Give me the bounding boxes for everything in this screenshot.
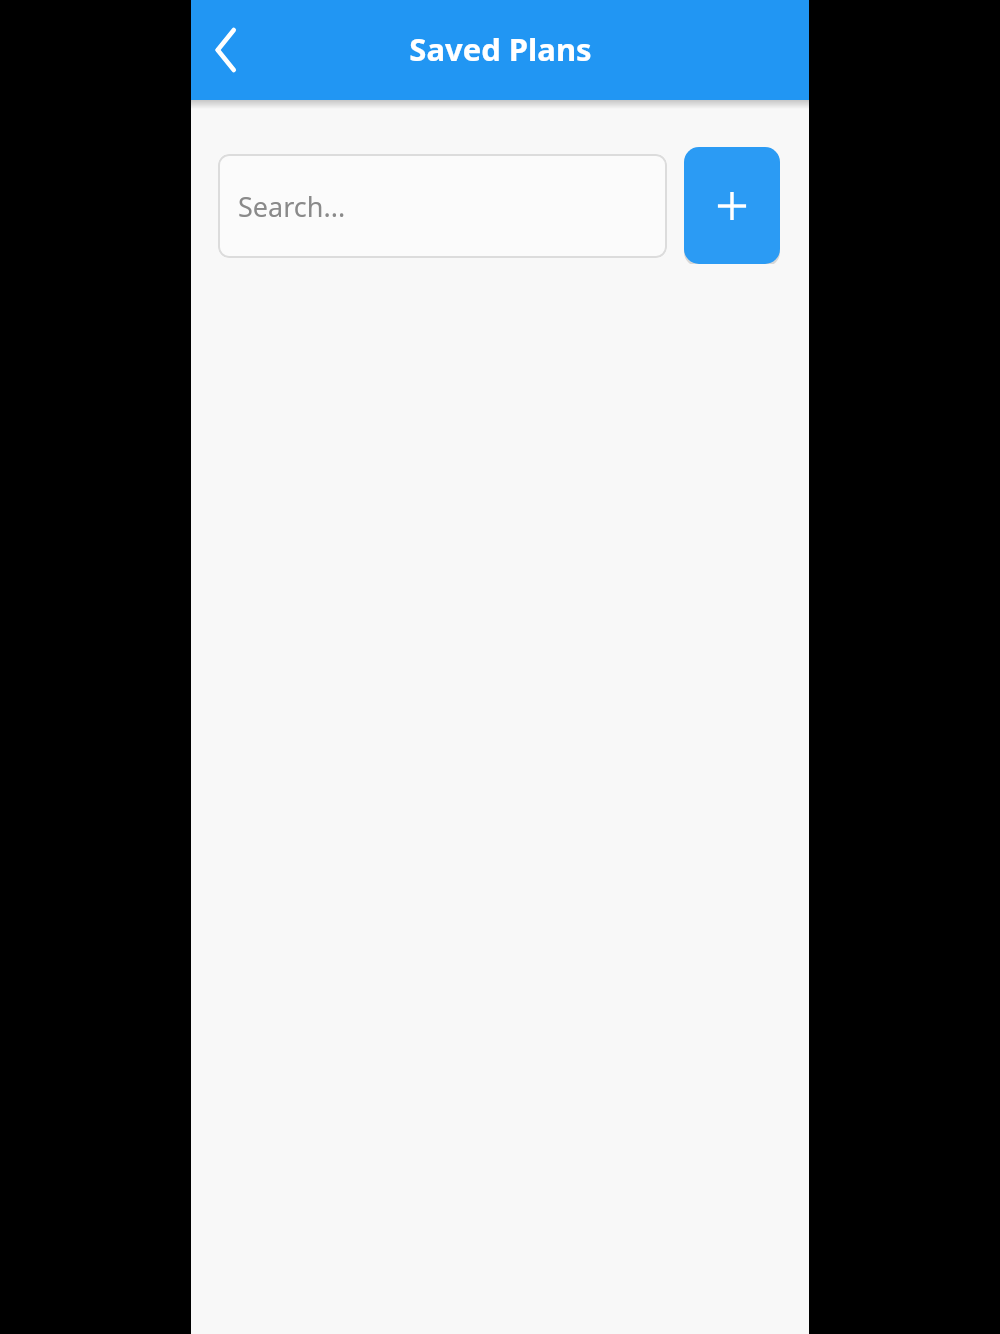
staticText: Saved Plans — [409, 28, 592, 70]
button[interactable]: Back — [197, 21, 255, 79]
button[interactable]: Add plan — [684, 147, 780, 264]
staticText: Search... — [238, 188, 346, 225]
button[interactable]: Search... — [218, 154, 667, 258]
